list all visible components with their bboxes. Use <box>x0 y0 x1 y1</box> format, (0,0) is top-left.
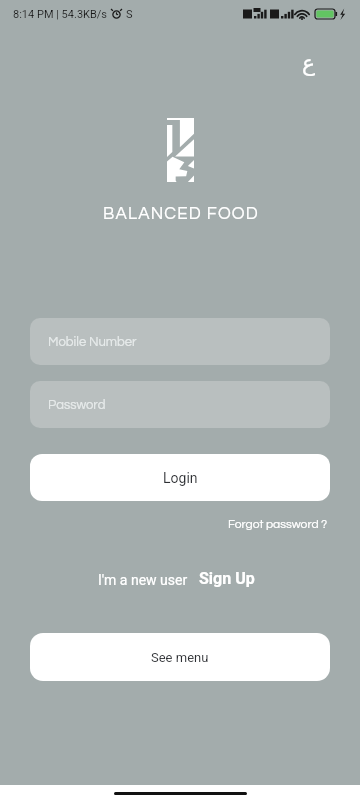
staticText: Password <box>48 398 106 411</box>
staticText: 8:14 PM | 54.3KB/s <box>13 8 108 21</box>
staticText: Sign Up <box>199 569 255 588</box>
button[interactable]: Mobile Number <box>30 318 330 365</box>
button[interactable]: Forgot password ? <box>224 515 332 533</box>
button[interactable]: Sign Up <box>199 569 255 588</box>
button[interactable]: Password <box>30 381 330 428</box>
staticText: Forgot password ? <box>228 518 328 530</box>
staticText: I'm a new user <box>98 572 188 588</box>
staticText: See menu <box>151 650 209 665</box>
staticText: S <box>126 8 133 21</box>
staticText: ع <box>302 51 316 77</box>
staticText: Mobile Number <box>48 335 137 348</box>
staticText: Login <box>163 470 198 486</box>
button[interactable]: See menu <box>30 633 330 681</box>
button[interactable]: Login <box>30 454 330 501</box>
button[interactable]: Switch language to Arabic <box>290 45 328 83</box>
staticText: BALANCED FOOD <box>1 205 360 223</box>
